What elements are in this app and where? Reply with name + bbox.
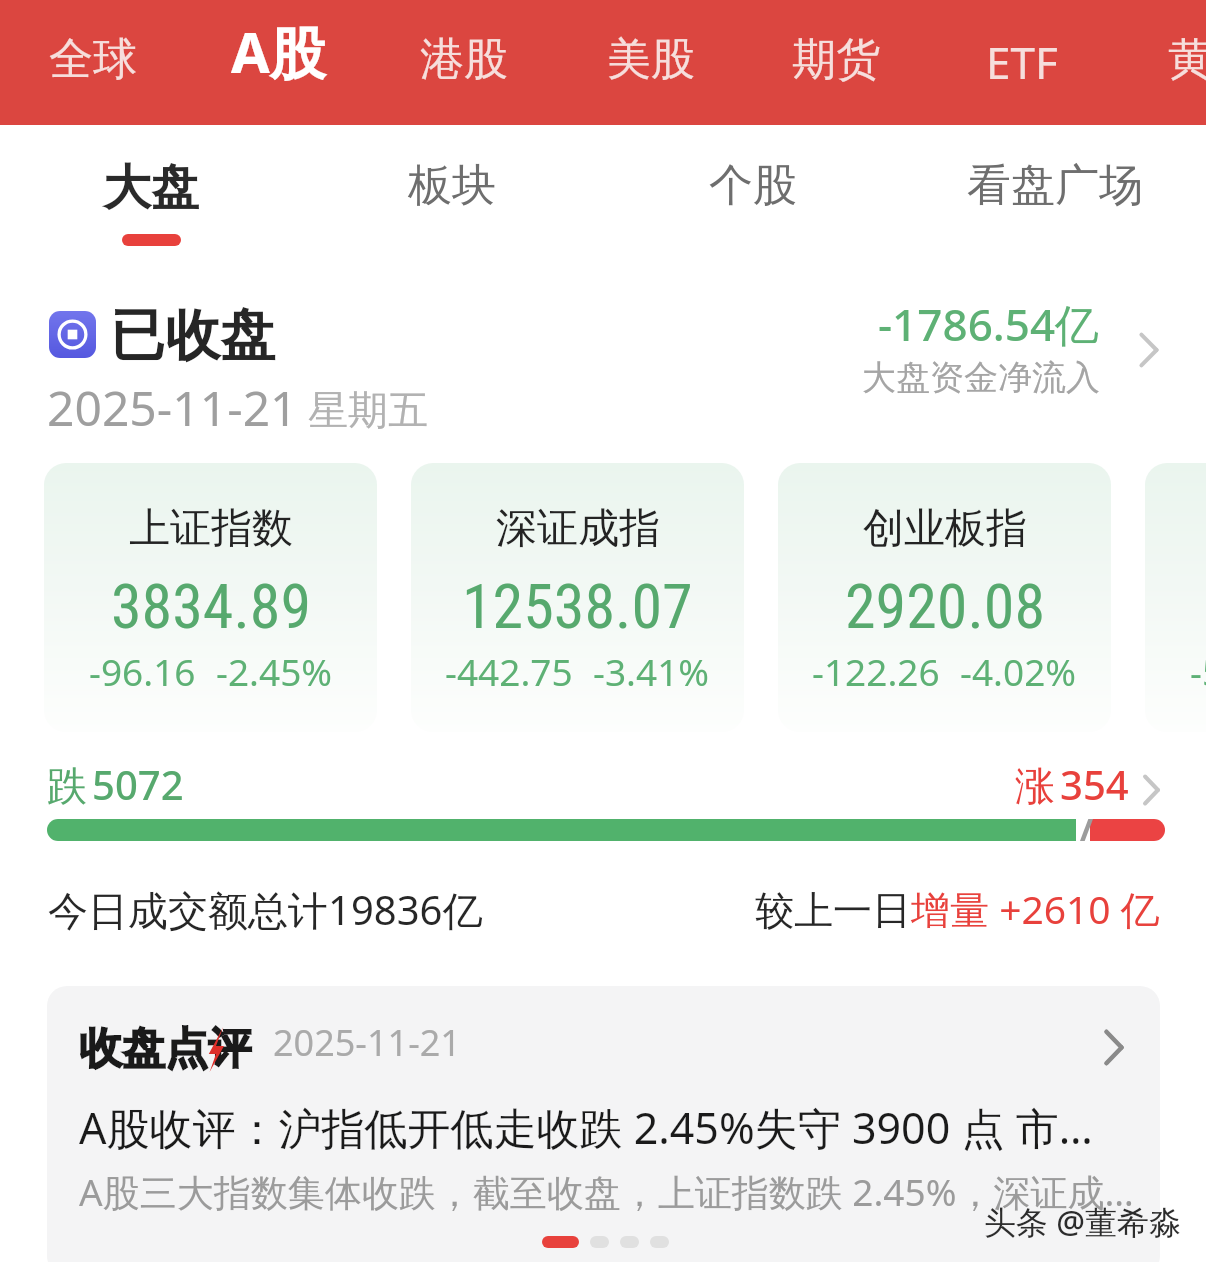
staticText: 板块 [408,158,496,213]
staticText: -96.16 [89,646,196,696]
staticText: 美股 [607,32,695,87]
staticText: 星期五 [308,385,428,435]
button[interactable]: 创业板指 [778,463,1111,732]
staticText: ETF [986,32,1058,92]
staticText: -4.02% [960,646,1077,696]
button[interactable]: 全球 [45,0,141,125]
staticText: 12538.07 [462,570,693,643]
staticText: 跌 [47,761,87,811]
staticText: A股三大指数集体收跌，截至收盘，上证指数跌 2.45%，深证成… [79,1166,1134,1217]
button[interactable]: 北证50 [1145,463,1206,732]
staticText: 今日成交额总计19836亿 [48,882,483,937]
button[interactable]: 查看收盘点评 [1104,1030,1124,1065]
button[interactable]: ETF [977,0,1066,125]
staticText: 已收盘 [110,301,275,370]
button[interactable]: 跌 [0,752,1206,852]
staticText: 上证指数 [129,503,293,555]
button[interactable]: 港股 [416,0,512,125]
button[interactable]: 个股 [602,125,904,245]
staticText: 头条 @董希淼 [984,1200,1182,1244]
staticText: 黄 [1168,32,1206,87]
staticText: -442.75 [445,646,573,696]
staticText: 创业板指 [863,503,1027,555]
staticText: A股 [231,13,326,89]
button[interactable]: 查看大盘资金净流入 [1139,333,1159,367]
staticText: 2025-11-21 [47,375,298,440]
staticText: -3.41% [593,646,710,696]
staticText: 深证成指 [496,503,660,555]
button[interactable]: 美股 [603,0,699,125]
button[interactable]: 大盘 [0,125,301,245]
button[interactable]: 期货 [788,0,884,125]
staticText: 看盘广场 [967,158,1143,213]
staticText: 大盘资金净流入 [862,356,1100,399]
staticText: 涨 [1015,761,1055,811]
staticText: 2920.08 [845,570,1045,643]
staticText: A股收评：沪指低开低走收跌 2.45%失守 3900 点 市… [79,1098,1093,1157]
staticText: 大盘 [103,158,199,218]
button[interactable]: 深证成指 [411,463,744,732]
button[interactable]: 上证指数 [44,463,377,732]
staticText: 354 [1060,757,1129,811]
button[interactable]: 黄 [1164,0,1206,125]
button[interactable]: A股 [229,0,327,125]
staticText: 个股 [709,158,797,213]
staticText: -1786.54亿 [878,294,1100,354]
staticText: 5072 [92,757,184,811]
staticText: 全球 [49,32,137,87]
staticText: 收盘点评 [79,1022,251,1076]
staticText: -2.45% [216,646,333,696]
staticText: 2025-11-21 [273,1018,461,1067]
staticText: 港股 [420,32,508,87]
staticText: -51.02 [1190,646,1206,696]
staticText: -122.26 [812,646,940,696]
staticText: 期货 [792,32,880,87]
button[interactable]: 收盘点评 [47,986,1160,1262]
button[interactable]: 已收盘 [0,290,1206,435]
button[interactable]: 板块 [301,125,602,245]
button[interactable]: 看盘广场 [904,125,1206,245]
staticText: 较上一日增量 +2610 亿 [755,882,1160,935]
staticText: 3834.89 [111,570,311,643]
